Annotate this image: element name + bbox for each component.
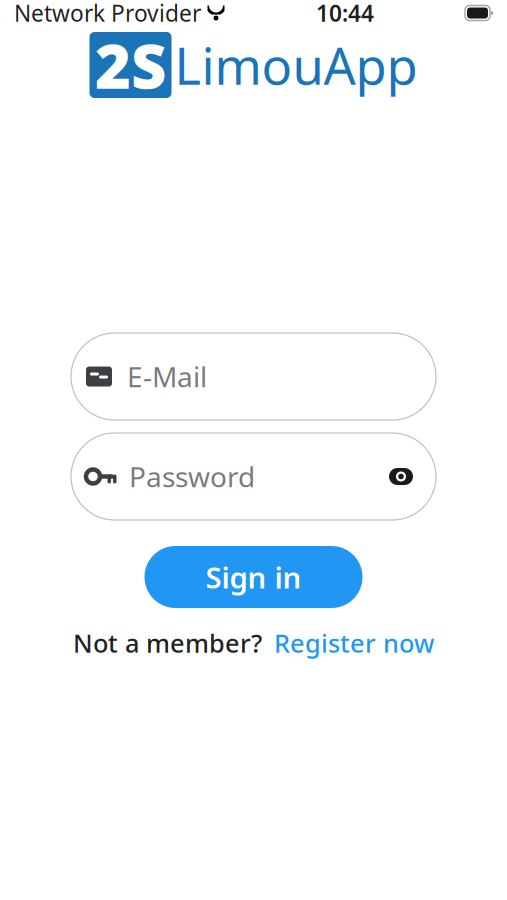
staticText: Register now (274, 626, 434, 660)
button[interactable]: E-Mail (71, 333, 436, 420)
button[interactable]: Show password (388, 465, 414, 487)
staticText: Not a member? (73, 626, 262, 660)
button[interactable]: Register now (274, 626, 434, 660)
staticText: E-Mail (127, 358, 207, 395)
staticText: Sign in (205, 557, 301, 596)
staticText: 10:44 (316, 0, 374, 28)
staticText: LimouApp (174, 31, 417, 99)
staticText: Network Provider (14, 0, 201, 28)
staticText: 2S (95, 24, 166, 106)
staticText: Password (129, 458, 255, 495)
button[interactable]: Password (71, 433, 436, 520)
button[interactable]: Sign in (144, 546, 362, 608)
